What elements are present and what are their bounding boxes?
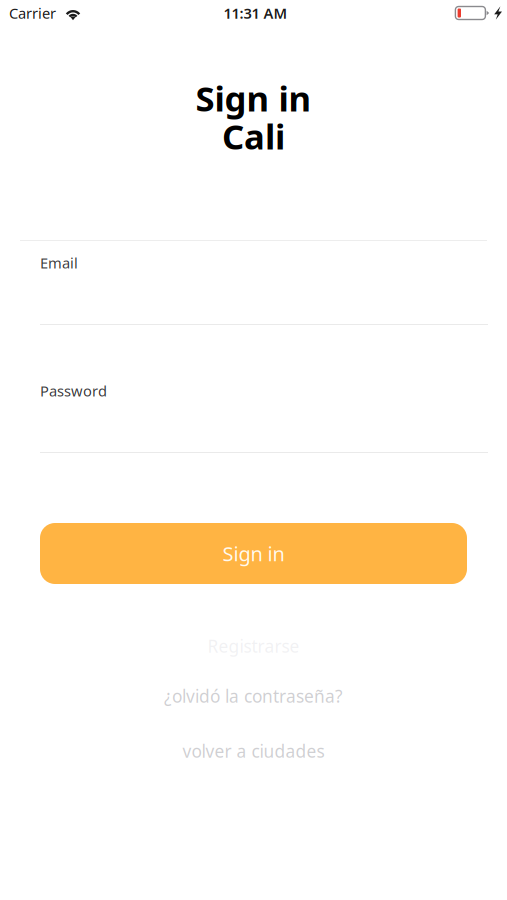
- staticText: Password: [40, 381, 107, 400]
- staticText: ¿olvidó la contraseña?: [164, 684, 343, 707]
- staticText: Sign in: [222, 540, 284, 567]
- button[interactable]: Sign in: [40, 523, 467, 584]
- button[interactable]: volver a ciudades: [0, 734, 507, 768]
- staticText: Email: [40, 253, 78, 272]
- button[interactable]: ¿olvidó la contraseña?: [0, 679, 507, 713]
- staticText: Registrarse: [207, 634, 299, 657]
- staticText: volver a ciudades: [182, 739, 324, 762]
- staticText: Sign in: [195, 75, 311, 121]
- staticText: Cali: [222, 113, 285, 159]
- staticText: Carrier: [9, 3, 56, 23]
- staticText: 11:31 AM: [223, 3, 287, 23]
